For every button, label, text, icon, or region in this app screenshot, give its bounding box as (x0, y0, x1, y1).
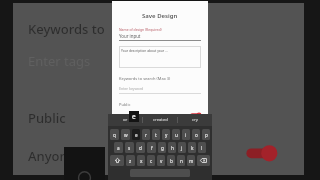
staticText: Save Design (142, 12, 178, 20)
staticText: Anyone can (28, 147, 101, 165)
other: Anyone can see this toggle (190, 113, 201, 117)
staticText: x (140, 158, 143, 164)
staticText: e (132, 112, 136, 121)
staticText: Your description about your ... (121, 48, 168, 52)
staticText: o (195, 132, 198, 138)
staticText: Your input (119, 33, 141, 39)
staticText: created (153, 117, 168, 123)
staticText: l (201, 145, 203, 151)
staticText: Enter keyword (119, 86, 144, 91)
button[interactable]: Your description about your ... (119, 46, 201, 68)
staticText: r (145, 132, 147, 138)
button[interactable]: Anyone can see this (119, 113, 201, 117)
button[interactable]: p (202, 129, 210, 140)
staticText: i (185, 132, 187, 138)
staticText: d (139, 145, 142, 151)
staticText: Enter tags (28, 52, 91, 70)
staticText: s (128, 145, 131, 151)
button[interactable]: Backspace (197, 155, 210, 166)
button[interactable]: or (108, 114, 142, 126)
staticText: a (117, 145, 120, 151)
staticText: z (129, 158, 132, 164)
button[interactable]: w (121, 129, 130, 140)
button[interactable]: created (143, 114, 177, 126)
staticText: j (181, 145, 183, 151)
button[interactable]: l (198, 142, 206, 153)
staticText: q (113, 132, 116, 138)
button[interactable]: cry (178, 114, 212, 126)
button[interactable]: m (187, 155, 195, 166)
staticText: Keywords to (28, 20, 105, 38)
button[interactable]: x (137, 155, 145, 166)
button[interactable]: v (157, 155, 165, 166)
staticText: k (191, 145, 194, 151)
staticText: Name of design (Required) (119, 27, 162, 32)
button[interactable]: c (147, 155, 155, 166)
button[interactable]: g (158, 142, 166, 153)
button[interactable]: d (136, 142, 145, 153)
staticText: h (171, 145, 174, 151)
staticText: n (180, 158, 183, 164)
staticText: or (123, 117, 128, 123)
staticText: Public (28, 109, 66, 127)
button[interactable]: a (114, 142, 123, 153)
button[interactable]: e (132, 129, 140, 140)
staticText: cry (192, 117, 198, 123)
button[interactable]: f (147, 142, 156, 153)
staticText: m (189, 158, 194, 164)
button[interactable]: k (188, 142, 196, 153)
button[interactable]: i (182, 129, 190, 140)
staticText: w (124, 132, 128, 138)
staticText: Keywords to search (Max 3) (119, 76, 171, 81)
button[interactable]: Shift (110, 155, 124, 166)
button[interactable]: Enter keyword (119, 86, 201, 91)
staticText: Public (119, 102, 131, 107)
staticText: v (160, 158, 163, 164)
staticText: c (150, 158, 153, 164)
button[interactable]: n (177, 155, 185, 166)
staticText: b (170, 158, 173, 164)
staticText: Anyone can see this (119, 113, 153, 117)
button[interactable]: z (126, 155, 135, 166)
button[interactable]: y (162, 129, 170, 140)
button[interactable]: j (178, 142, 186, 153)
button[interactable]: s (125, 142, 134, 153)
staticText: f (151, 145, 153, 151)
staticText: e (135, 132, 138, 138)
staticText: t (155, 132, 157, 138)
button[interactable]: u (172, 129, 180, 140)
button[interactable]: o (192, 129, 200, 140)
button[interactable]: h (168, 142, 176, 153)
button[interactable]: q (110, 129, 119, 140)
staticText: y (165, 132, 168, 138)
staticText: p (205, 132, 208, 138)
button[interactable]: r (142, 129, 150, 140)
staticText: u (175, 132, 178, 138)
staticText: g (161, 145, 164, 151)
button[interactable]: t (152, 129, 160, 140)
button[interactable]: Public visibility toggle (245, 146, 277, 160)
button[interactable]: b (167, 155, 175, 166)
